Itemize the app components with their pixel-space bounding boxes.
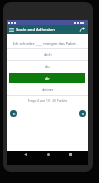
button[interactable]: Back	[21, 150, 29, 158]
button[interactable]: Share	[78, 25, 87, 34]
staticText: Frage 4 von 10 · 30 Punkte	[7, 99, 88, 103]
staticText: dich	[44, 52, 52, 57]
button[interactable]: Home	[44, 150, 52, 158]
button[interactable]: dir	[9, 73, 85, 83]
button[interactable]: du	[7, 60, 88, 72]
staticText: du	[45, 64, 50, 69]
button[interactable]: Recent apps	[66, 150, 74, 158]
button[interactable]: Previous question	[10, 110, 17, 117]
staticText: Scale and Adhesion	[16, 27, 55, 33]
button[interactable]: Next question	[79, 110, 86, 117]
button[interactable]: Menu	[7, 25, 16, 34]
staticText: deiner	[42, 87, 54, 92]
button[interactable]: dich	[7, 48, 88, 61]
staticText: Ich schreibe ____ morgen das Paket.	[13, 41, 77, 46]
button[interactable]: deiner	[7, 83, 88, 95]
staticText: dir	[45, 76, 50, 81]
